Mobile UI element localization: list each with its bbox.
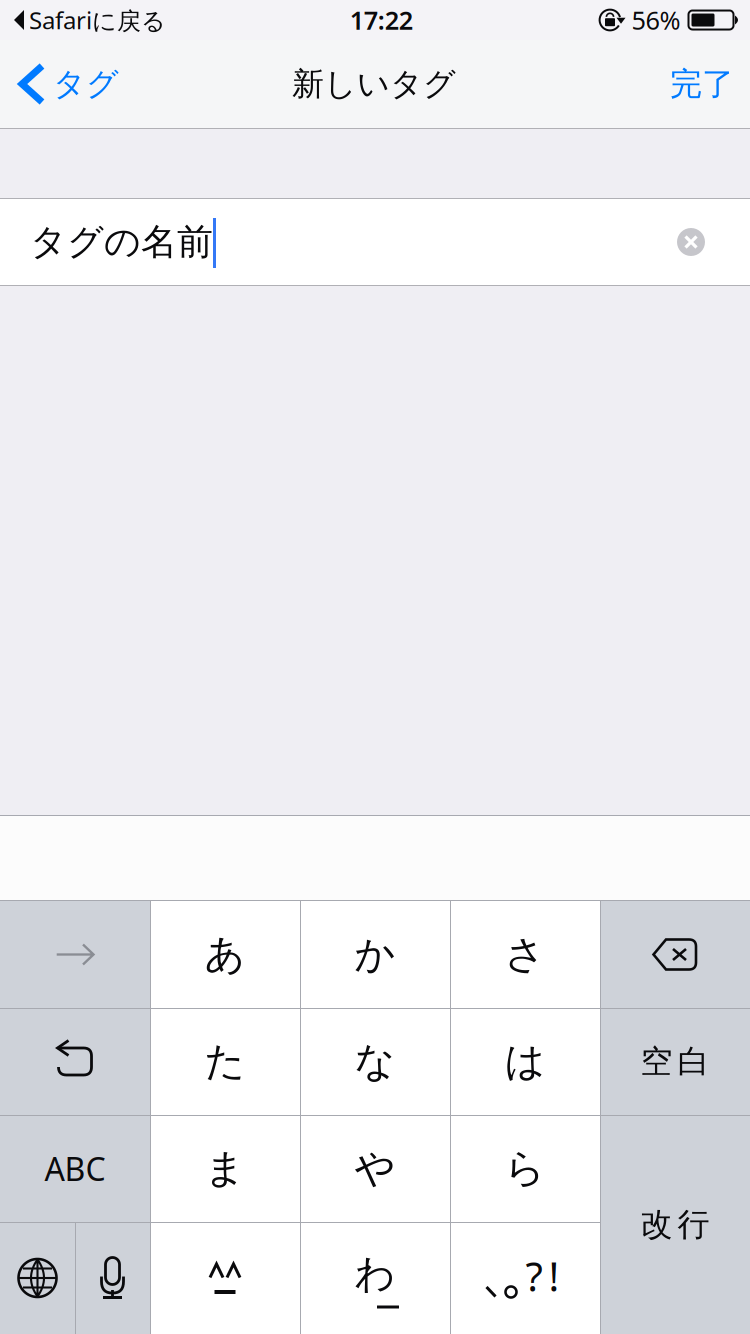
staticText: 改行 [640,1205,709,1244]
button[interactable]: テキストを消去 [659,210,723,274]
button[interactable]: ABC [0,1115,150,1222]
button[interactable]: ま [150,1115,300,1222]
button[interactable]: 削除 [600,901,750,1008]
staticText: 17:22 [350,3,413,37]
button[interactable]: タグの名前 [0,199,655,285]
staticText: 新しいタグ [292,64,456,104]
button[interactable] [150,1222,300,1334]
staticText: わ [354,1249,395,1298]
button[interactable]: 空白 [600,1008,750,1115]
staticText: ! [548,1249,559,1302]
button[interactable]: 取り消す [0,1008,150,1115]
staticText: は [504,1037,545,1086]
button[interactable]: 完了 [650,40,750,128]
staticText: ま [204,1144,245,1193]
button[interactable]: か [300,901,450,1008]
button[interactable]: タグ [0,40,129,128]
button[interactable]: あ [150,901,300,1008]
staticText: ABC [44,1147,105,1190]
button[interactable]: や [300,1115,450,1222]
staticText: さ [504,930,545,979]
staticText: 56% [631,3,680,37]
staticText: Safariに戻る [29,4,166,36]
staticText: タグ [53,64,119,104]
button[interactable]: Safariに戻る [0,0,166,40]
button[interactable]: は [450,1008,600,1115]
button[interactable]: 次候補 [0,901,150,1008]
staticText: 空白 [640,1042,709,1081]
staticText: た [204,1037,245,1086]
button[interactable]: キーボードを切り替え [0,1222,75,1334]
staticText: や [354,1144,395,1193]
button[interactable]: ? [450,1222,600,1334]
staticText: な [354,1037,395,1086]
staticText: か [354,930,395,979]
button[interactable]: さ [450,901,600,1008]
staticText: ら [504,1144,545,1193]
staticText: ? [525,1249,542,1302]
button[interactable]: た [150,1008,300,1115]
staticText: あ [204,930,245,979]
button[interactable]: 音声入力 [75,1222,150,1334]
staticText: 完了 [670,64,734,104]
button[interactable]: ら [450,1115,600,1222]
staticText: タグの名前 [30,220,213,264]
button[interactable]: な [300,1008,450,1115]
button[interactable]: 改行 [600,1115,750,1334]
button[interactable]: わ [300,1222,450,1334]
